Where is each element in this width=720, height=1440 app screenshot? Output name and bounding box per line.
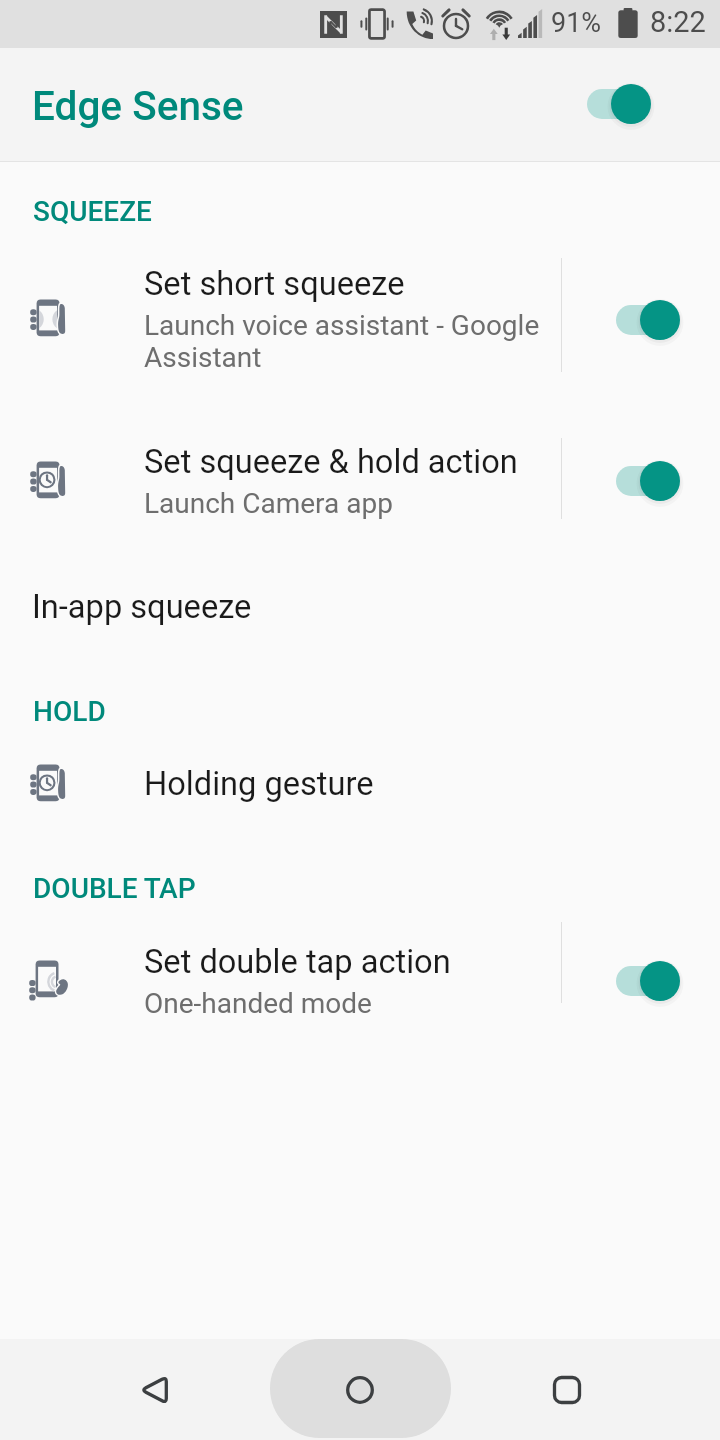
button[interactable]: Home xyxy=(310,1339,410,1440)
staticText: Holding gesture xyxy=(144,765,374,803)
button[interactable]: Enable Edge Sense xyxy=(561,73,681,133)
button[interactable]: In-app squeeze xyxy=(0,566,720,664)
staticText: DOUBLE TAP xyxy=(33,872,196,905)
staticText: Set squeeze & hold action xyxy=(144,443,518,481)
staticText: Launch voice assistant - Google Assistan… xyxy=(144,310,540,374)
staticText: One-handed mode xyxy=(144,988,372,1020)
button[interactable] xyxy=(0,248,720,390)
button[interactable] xyxy=(0,912,720,1044)
staticText: In-app squeeze xyxy=(32,588,252,626)
staticText: HOLD xyxy=(33,695,106,728)
staticText: Edge Sense xyxy=(32,82,244,129)
button[interactable]: Recent apps xyxy=(517,1339,617,1440)
staticText: Set double tap action xyxy=(144,943,451,981)
staticText: 91% xyxy=(551,7,602,39)
button[interactable] xyxy=(0,412,720,544)
staticText: SQUEEZE xyxy=(33,195,152,228)
button[interactable] xyxy=(0,735,720,835)
staticText: 8:22 xyxy=(650,5,706,39)
staticText: Set short squeeze xyxy=(144,265,405,303)
button[interactable]: Back xyxy=(104,1339,204,1440)
button[interactable]: Toggle Set squeeze & hold action xyxy=(600,450,700,510)
button[interactable]: Toggle Set short squeeze xyxy=(600,289,700,349)
staticText: Launch Camera app xyxy=(144,488,393,520)
button[interactable]: Toggle Set double tap action xyxy=(600,950,700,1010)
